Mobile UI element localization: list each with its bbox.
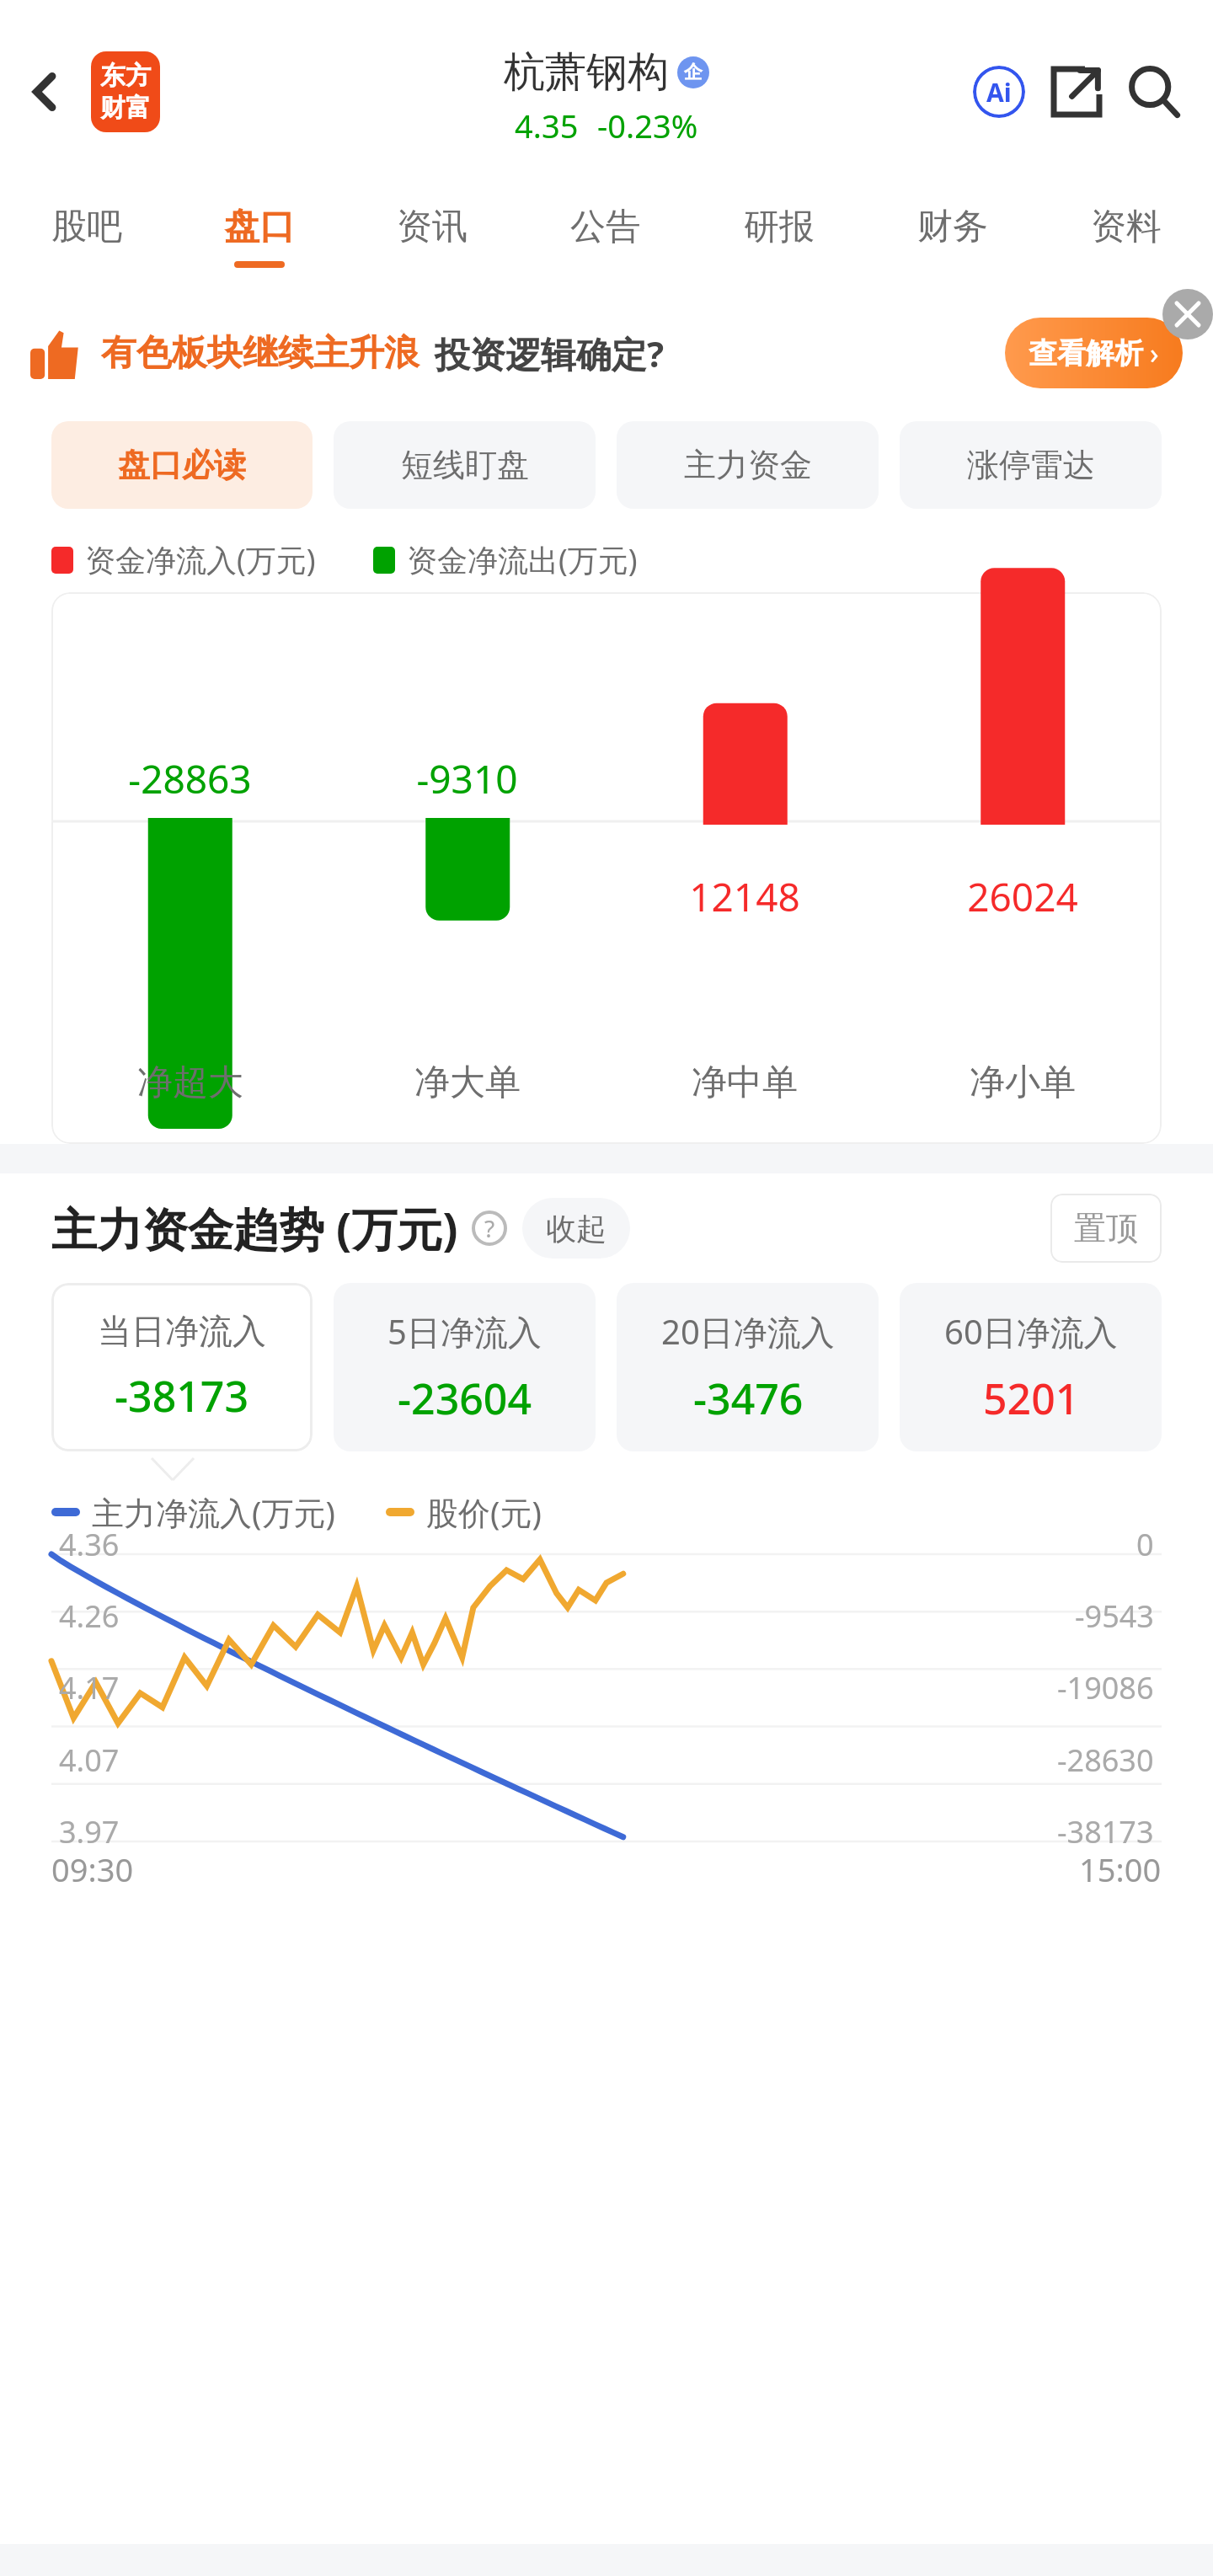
button[interactable]: East Money xyxy=(91,51,160,132)
staticText: 4.17 xyxy=(59,1667,120,1708)
staticText: -9310 xyxy=(416,752,518,805)
staticText: ? xyxy=(484,1212,495,1244)
button[interactable]: 20日净流入 xyxy=(617,1283,879,1451)
staticText: 财富 xyxy=(100,92,151,124)
button[interactable]: 收起 xyxy=(522,1198,630,1259)
staticText: 4.36 xyxy=(59,1524,120,1565)
staticText: 财务 xyxy=(917,205,988,249)
staticText: 公告 xyxy=(570,205,641,249)
staticText: 盘口必读 xyxy=(118,445,246,485)
staticText: › xyxy=(1150,334,1159,372)
staticText: 净小单 xyxy=(970,1061,1076,1105)
staticText: 研报 xyxy=(744,205,815,249)
staticText: 股价(元) xyxy=(426,1490,542,1534)
staticText: 09:30 xyxy=(51,1847,134,1891)
button[interactable]: 财务 xyxy=(866,184,1039,289)
button[interactable]: 主力资金 xyxy=(617,421,879,509)
button[interactable]: AI xyxy=(960,53,1038,131)
staticText: 杭萧钢构 xyxy=(504,46,669,99)
staticText: 4.26 xyxy=(59,1595,120,1637)
staticText: 4.07 xyxy=(59,1740,120,1781)
staticText: -3476 xyxy=(693,1370,804,1427)
staticText: 20日净流入 xyxy=(661,1308,835,1355)
staticText: 26024 xyxy=(967,870,1078,923)
button[interactable]: 5日净流入 xyxy=(334,1283,596,1451)
button[interactable]: 置顶 xyxy=(1050,1194,1162,1263)
button[interactable]: 查看解析 xyxy=(1005,318,1183,388)
staticText: -38173 xyxy=(115,1367,249,1424)
staticText: 15:00 xyxy=(1079,1847,1162,1891)
staticText: 股吧 xyxy=(51,205,122,249)
button[interactable]: 60日净流入 xyxy=(900,1283,1162,1451)
staticText: 净大单 xyxy=(414,1061,521,1105)
staticText: 置顶 xyxy=(1074,1208,1138,1248)
staticText: 当日净流入 xyxy=(98,1310,266,1352)
button[interactable]: Search xyxy=(1115,53,1193,131)
staticText: -28630 xyxy=(1057,1740,1154,1781)
staticText: 5201 xyxy=(983,1370,1080,1427)
staticText: 资金净流入(万元) xyxy=(85,539,316,580)
staticText: 资讯 xyxy=(397,205,468,249)
staticText: 东方 xyxy=(100,60,151,92)
button[interactable]: 短线盯盘 xyxy=(334,421,596,509)
staticText: Ai xyxy=(986,75,1012,110)
staticText: 5日净流入 xyxy=(387,1308,542,1355)
button[interactable]: 股吧 xyxy=(0,184,173,289)
button[interactable]: Share xyxy=(1038,53,1115,131)
staticText: -28863 xyxy=(128,752,252,805)
staticText: 短线盯盘 xyxy=(401,445,529,485)
staticText: 有色板块继续主升浪 xyxy=(101,331,419,376)
staticText: -0.23% xyxy=(597,104,698,147)
staticText: 主力资金 xyxy=(684,445,812,485)
staticText: -23604 xyxy=(398,1370,532,1427)
staticText: 主力资金趋势 (万元) xyxy=(51,1197,458,1259)
button[interactable]: Close xyxy=(1162,289,1213,339)
staticText: -19086 xyxy=(1057,1667,1154,1708)
staticText: 3.97 xyxy=(59,1811,120,1852)
staticText: 投资逻辑确定? xyxy=(435,329,665,377)
staticText: 盘口 xyxy=(224,205,295,249)
button[interactable]: 研报 xyxy=(692,184,866,289)
button[interactable]: Back xyxy=(12,58,79,126)
staticText: 0 xyxy=(1136,1524,1154,1565)
button[interactable]: 资讯 xyxy=(345,184,519,289)
staticText: -38173 xyxy=(1057,1811,1154,1852)
staticText: 企 xyxy=(684,61,703,84)
staticText: 4.35 xyxy=(515,104,579,147)
staticText: 60日净流入 xyxy=(944,1308,1118,1355)
staticText: -9543 xyxy=(1075,1595,1154,1637)
button[interactable]: 资料 xyxy=(1039,184,1213,289)
staticText: 收起 xyxy=(546,1210,606,1248)
staticText: 涨停雷达 xyxy=(967,445,1095,485)
staticText: 查看解析 xyxy=(1029,335,1143,371)
button[interactable]: 盘口必读 xyxy=(51,421,313,509)
button[interactable]: Help xyxy=(470,1209,509,1248)
staticText: 资金净流出(万元) xyxy=(407,539,638,580)
staticText: 主力净流入(万元) xyxy=(92,1490,335,1534)
button[interactable]: 当日净流入 xyxy=(51,1283,313,1451)
staticText: 12148 xyxy=(689,870,800,923)
button[interactable]: 涨停雷达 xyxy=(900,421,1162,509)
staticText: 净中单 xyxy=(692,1061,798,1105)
button[interactable]: 公告 xyxy=(519,184,692,289)
button[interactable]: 盘口 xyxy=(173,184,345,289)
staticText: 净超大 xyxy=(137,1061,243,1105)
staticText: 资料 xyxy=(1091,205,1162,249)
